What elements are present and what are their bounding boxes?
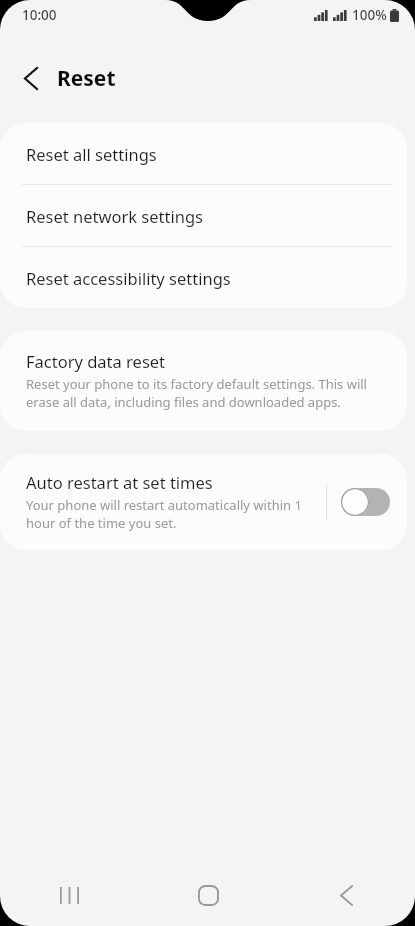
staticText: Auto restart at set times [26, 471, 213, 493]
button[interactable]: Recents [0, 864, 139, 926]
staticText: Factory data reset [26, 350, 166, 372]
staticText: Your phone will restart automatically wi… [26, 496, 320, 532]
staticText: Reset network settings [26, 205, 203, 227]
button[interactable]: Back [14, 61, 48, 95]
button[interactable]: Reset all settings [0, 123, 407, 184]
button[interactable]: Home [139, 864, 277, 926]
staticText: Reset your phone to its factory default … [26, 375, 379, 411]
button[interactable]: Back [277, 864, 415, 926]
button[interactable]: Factory data reset [0, 331, 407, 431]
button[interactable]: Auto restart at set times [0, 454, 407, 550]
button[interactable]: Auto restart toggle, off [339, 485, 391, 519]
staticText: Reset all settings [26, 143, 157, 165]
staticText: 100% [352, 6, 387, 24]
staticText: Reset accessibility settings [26, 267, 231, 289]
staticText: Reset [57, 64, 116, 93]
staticText: 10:00 [22, 6, 57, 24]
button[interactable]: Reset network settings [0, 185, 407, 246]
button[interactable]: Reset accessibility settings [0, 247, 407, 308]
